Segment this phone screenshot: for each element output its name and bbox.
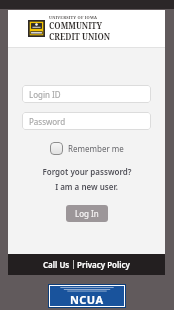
staticText: NCUA bbox=[70, 292, 104, 306]
button[interactable]: Password bbox=[22, 112, 151, 130]
staticText: COMMUNITY bbox=[49, 20, 103, 31]
staticText: Password bbox=[29, 116, 66, 127]
button[interactable]: Remember me checkbox bbox=[50, 142, 63, 155]
staticText: I am a new user. bbox=[55, 181, 118, 192]
staticText: Remember me bbox=[68, 143, 124, 154]
button[interactable]: Log In bbox=[66, 205, 108, 222]
staticText: Log In bbox=[75, 208, 99, 219]
button[interactable]: Login ID bbox=[22, 85, 151, 103]
staticText: UNIVERSITY OF IOWA bbox=[49, 15, 98, 20]
staticText: Call Us bbox=[43, 259, 70, 270]
staticText: Login ID bbox=[29, 89, 61, 100]
staticText: CREDIT UNION bbox=[49, 31, 111, 42]
button[interactable]: Remember me checkbox bbox=[48, 141, 126, 156]
button[interactable]: University of Iowa Community Credit Unio… bbox=[28, 15, 111, 42]
button[interactable]: Privacy Policy bbox=[74, 259, 133, 270]
button[interactable]: NCUA insured by NCUA bbox=[50, 286, 124, 306]
button[interactable]: I am a new user. bbox=[55, 181, 118, 192]
staticText: Privacy Policy bbox=[77, 259, 130, 270]
button[interactable]: Call Us bbox=[40, 259, 73, 270]
button[interactable]: Forgot your password? bbox=[42, 166, 132, 177]
staticText: Forgot your password? bbox=[42, 166, 132, 177]
